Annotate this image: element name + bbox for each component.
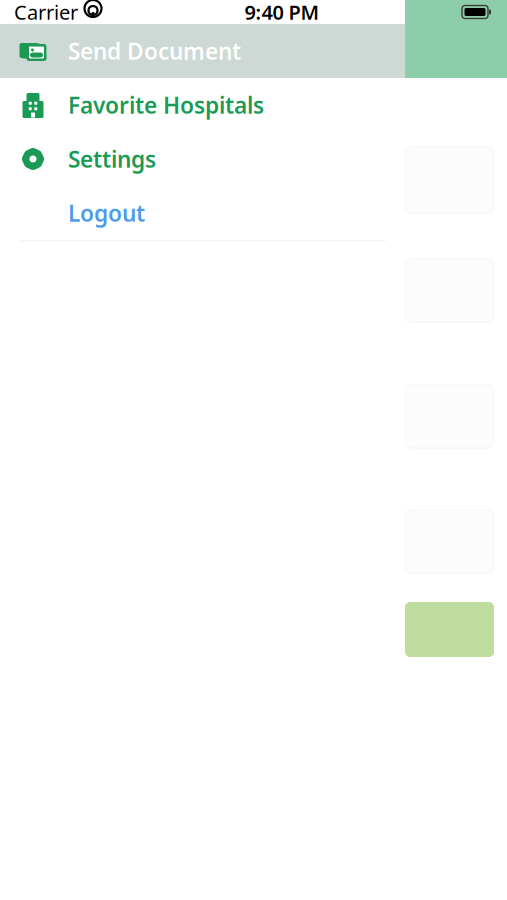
button[interactable]: Send Document xyxy=(0,24,405,78)
staticText: Send Document xyxy=(68,36,241,66)
staticText: Favorite Hospitals xyxy=(68,90,264,120)
button[interactable]: Logout xyxy=(0,186,405,240)
button[interactable]: Favorite Hospitals xyxy=(0,78,405,132)
staticText: 9:40 PM xyxy=(244,0,319,25)
staticText: Carrier xyxy=(14,0,78,25)
staticText: Logout xyxy=(68,198,145,228)
staticText: Settings xyxy=(68,144,156,174)
button[interactable]: Settings xyxy=(0,132,405,186)
